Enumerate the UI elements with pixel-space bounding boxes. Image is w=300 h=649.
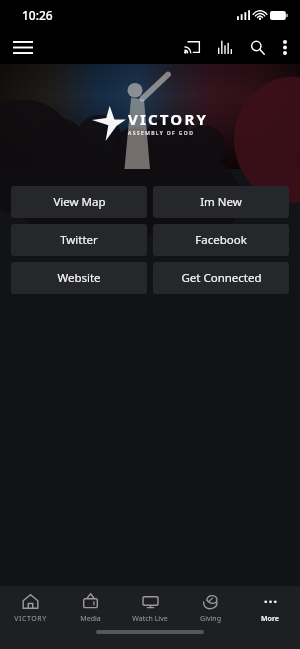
button[interactable]: More options [274,34,300,61]
staticText: Watch Live [132,614,168,624]
staticText: 10:26 [22,7,53,23]
staticText: View Map [53,194,106,210]
button[interactable]: Media [60,586,120,630]
staticText: More [261,614,279,624]
staticText: Giving [200,614,221,624]
staticText: Get Connected [181,270,262,286]
button[interactable]: Cast [175,33,209,61]
staticText: Website [57,270,101,286]
staticText: Twitter [60,232,98,248]
button[interactable]: Get Connected [153,262,289,294]
button[interactable]: Facebook [153,224,289,256]
button[interactable]: Open navigation menu [0,35,46,60]
staticText: VICTORY [128,109,209,129]
button[interactable]: Twitter [11,224,147,256]
button[interactable]: More [240,586,300,630]
staticText: VICTORY [14,614,47,624]
staticText: ASSEMBLY OF GOD [128,130,195,137]
staticText: Facebook [195,232,247,248]
button[interactable]: Search [241,34,274,61]
button[interactable]: Giving [180,586,240,630]
button[interactable]: Website [11,262,147,294]
staticText: Media [80,614,101,624]
button[interactable]: Watch Live [120,586,180,630]
button[interactable]: Audio levels [209,34,241,60]
button[interactable]: VICTORY [0,586,60,630]
staticText: Im New [200,194,242,210]
button[interactable]: Im New [153,186,289,218]
button[interactable]: View Map [11,186,147,218]
